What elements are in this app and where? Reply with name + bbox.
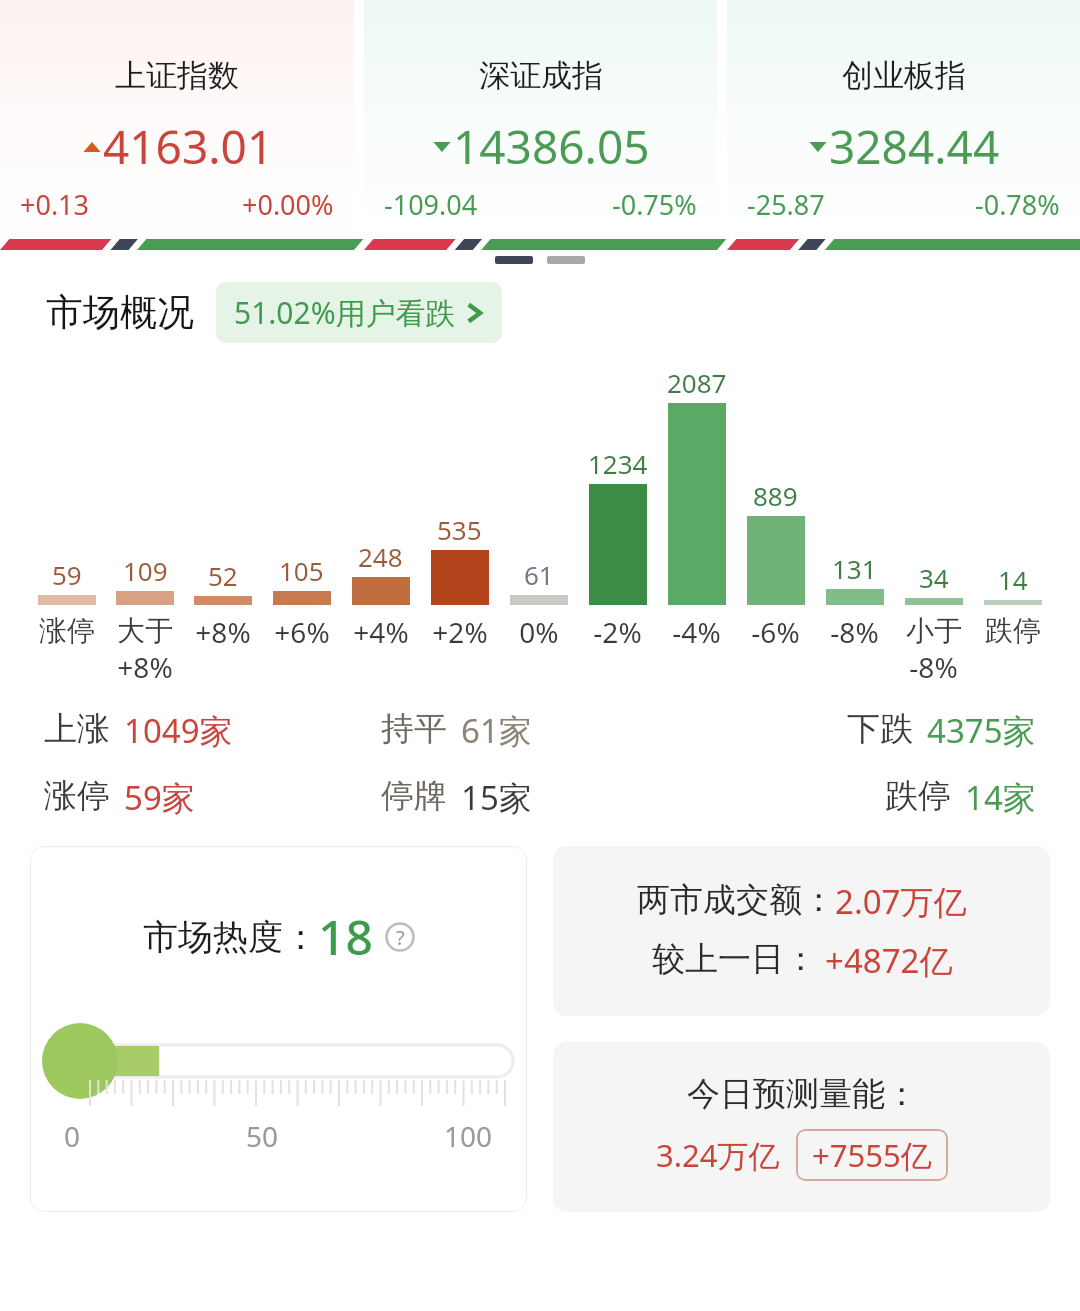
staticText: +0.00% [242, 186, 334, 223]
button[interactable]: 今日预测量能： [553, 1042, 1050, 1212]
staticText: 2087 [667, 365, 727, 400]
staticText: 131 [832, 551, 877, 586]
staticText: 14家 [965, 775, 1036, 820]
staticText: 上证指数 [115, 56, 239, 95]
staticText: 1049家 [124, 708, 233, 753]
button[interactable]: 上证指数 [0, 0, 354, 250]
staticText: 跌停 [985, 613, 1041, 648]
button[interactable]: 市场热度： [30, 846, 527, 1212]
button[interactable]: 创业板指 [727, 0, 1080, 250]
staticText: 34 [919, 560, 949, 595]
staticText: -8% [909, 648, 958, 686]
staticText: 下跌 [847, 708, 913, 750]
staticText: 18 [318, 904, 373, 969]
staticText: ? [396, 924, 405, 951]
staticText: 59 [52, 557, 82, 592]
staticText: +4% [353, 613, 409, 651]
staticText: 51.02%用户看跌 [234, 292, 456, 333]
staticText: 小于 [906, 613, 962, 648]
staticText: 52 [208, 558, 238, 593]
staticText: 59家 [124, 775, 195, 820]
staticText: 大于 [117, 613, 173, 648]
staticText: 0 [64, 1117, 81, 1155]
staticText: 市场热度： [143, 915, 318, 959]
staticText: 创业板指 [842, 56, 966, 95]
staticText: 535 [437, 512, 482, 547]
staticText: 105 [279, 553, 324, 588]
staticText: 4375家 [927, 708, 1036, 753]
staticText: 深证成指 [479, 56, 603, 95]
staticText: -2% [593, 613, 642, 651]
staticText: 61 [524, 557, 554, 592]
staticText: -4% [672, 613, 721, 651]
staticText: +4872亿 [825, 938, 953, 983]
button[interactable]: 两市成交额： [553, 846, 1050, 1016]
staticText: 248 [358, 539, 403, 574]
staticText: 0% [519, 613, 559, 651]
button[interactable]: 帮助 [385, 922, 415, 952]
staticText: 持平 [381, 708, 447, 750]
staticText: +6% [274, 613, 330, 651]
staticText: 3284.44 [829, 115, 1000, 178]
staticText: -25.87 [747, 186, 825, 223]
staticText: 今日预测量能： [687, 1073, 918, 1115]
staticText: 109 [123, 553, 168, 588]
staticText: 3.24万亿 [656, 1134, 780, 1176]
button[interactable]: 深证成指 [364, 0, 717, 250]
staticText: 涨停 [39, 613, 95, 648]
staticText: +0.13 [20, 186, 90, 223]
staticText: +2% [432, 613, 488, 651]
staticText: 较上一日： [652, 938, 817, 980]
staticText: 4163.01 [103, 115, 274, 178]
staticText: 14386.05 [453, 115, 650, 178]
staticText: -8% [830, 613, 879, 651]
staticText: 100 [444, 1117, 493, 1155]
staticText: 61家 [461, 708, 532, 753]
staticText: 14 [998, 562, 1028, 597]
staticText: 50 [246, 1117, 279, 1155]
staticText: -6% [751, 613, 800, 651]
staticText: 市场概况 [46, 289, 194, 336]
staticText: -0.78% [975, 186, 1060, 223]
staticText: 涨停 [44, 775, 110, 817]
staticText: +8% [117, 648, 173, 686]
staticText: +7555亿 [812, 1134, 932, 1176]
staticText: 889 [753, 478, 798, 513]
staticText: -0.75% [612, 186, 697, 223]
staticText: 上涨 [44, 708, 110, 750]
staticText: 1234 [588, 446, 648, 481]
staticText: 跌停 [885, 775, 951, 817]
staticText: 两市成交额： [637, 879, 835, 921]
staticText: 停牌 [381, 775, 447, 817]
button[interactable]: 51.02%用户看跌 [216, 282, 502, 343]
staticText: 2.07万亿 [835, 879, 967, 924]
staticText: +8% [195, 613, 251, 651]
staticText: 15家 [461, 775, 532, 820]
staticText: -109.04 [384, 186, 478, 223]
